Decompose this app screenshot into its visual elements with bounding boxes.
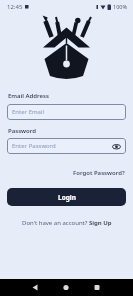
button[interactable]: Enter Email: [7, 104, 126, 120]
button[interactable]: [29, 282, 41, 293]
staticText: Email Address: [8, 92, 50, 100]
staticText: 12:45: [7, 3, 23, 11]
button[interactable]: [60, 282, 72, 293]
button[interactable]: Forgot Password?: [73, 169, 125, 177]
button[interactable]: [91, 282, 103, 293]
staticText: Enter Email: [12, 108, 45, 116]
staticText: Login: [58, 193, 76, 202]
button[interactable]: Login: [7, 188, 126, 206]
button[interactable]: [112, 143, 121, 150]
button[interactable]: Don't have an account? Sign Up: [22, 219, 112, 227]
staticText: Enter Password: [12, 142, 56, 150]
staticText: Password: [8, 127, 37, 135]
staticText: 100%: [113, 3, 128, 10]
button[interactable]: Enter Password: [7, 138, 126, 154]
